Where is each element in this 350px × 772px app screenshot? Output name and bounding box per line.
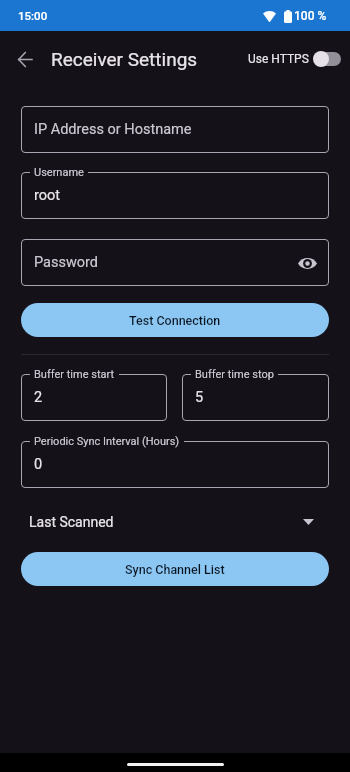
button[interactable] xyxy=(21,106,329,153)
staticText: 15:00 xyxy=(18,9,48,22)
button[interactable]: Back xyxy=(8,43,40,75)
staticText: Sync Channel List xyxy=(125,562,225,577)
staticText: Use HTTPS xyxy=(248,52,309,66)
staticText: root xyxy=(34,187,61,204)
button[interactable]: Use HTTPS xyxy=(248,51,350,67)
button[interactable]: Sync Channel List xyxy=(21,552,329,586)
staticText: Periodic Sync Interval (Hours) xyxy=(34,435,180,448)
button[interactable]: Last Scanned xyxy=(21,502,329,541)
staticText: Buffer time start xyxy=(34,368,115,381)
button[interactable] xyxy=(21,374,167,421)
button[interactable] xyxy=(21,172,329,219)
staticText: Username xyxy=(34,166,84,179)
staticText: Buffer time stop xyxy=(195,368,274,381)
staticText: 0 xyxy=(34,456,43,473)
staticText: Test Connection xyxy=(129,313,221,328)
staticText: 100 % xyxy=(294,9,327,23)
button[interactable] xyxy=(21,441,329,488)
staticText: 5 xyxy=(195,389,204,406)
staticText: Last Scanned xyxy=(29,514,114,530)
button[interactable] xyxy=(21,239,329,286)
staticText: Receiver Settings xyxy=(51,48,198,70)
staticText: Password xyxy=(34,254,99,271)
button[interactable]: Test Connection xyxy=(21,303,329,337)
button[interactable] xyxy=(182,374,329,421)
staticText: IP Address or Hostname xyxy=(34,121,192,138)
staticText: 2 xyxy=(34,389,43,406)
button[interactable]: Show password xyxy=(295,251,319,275)
